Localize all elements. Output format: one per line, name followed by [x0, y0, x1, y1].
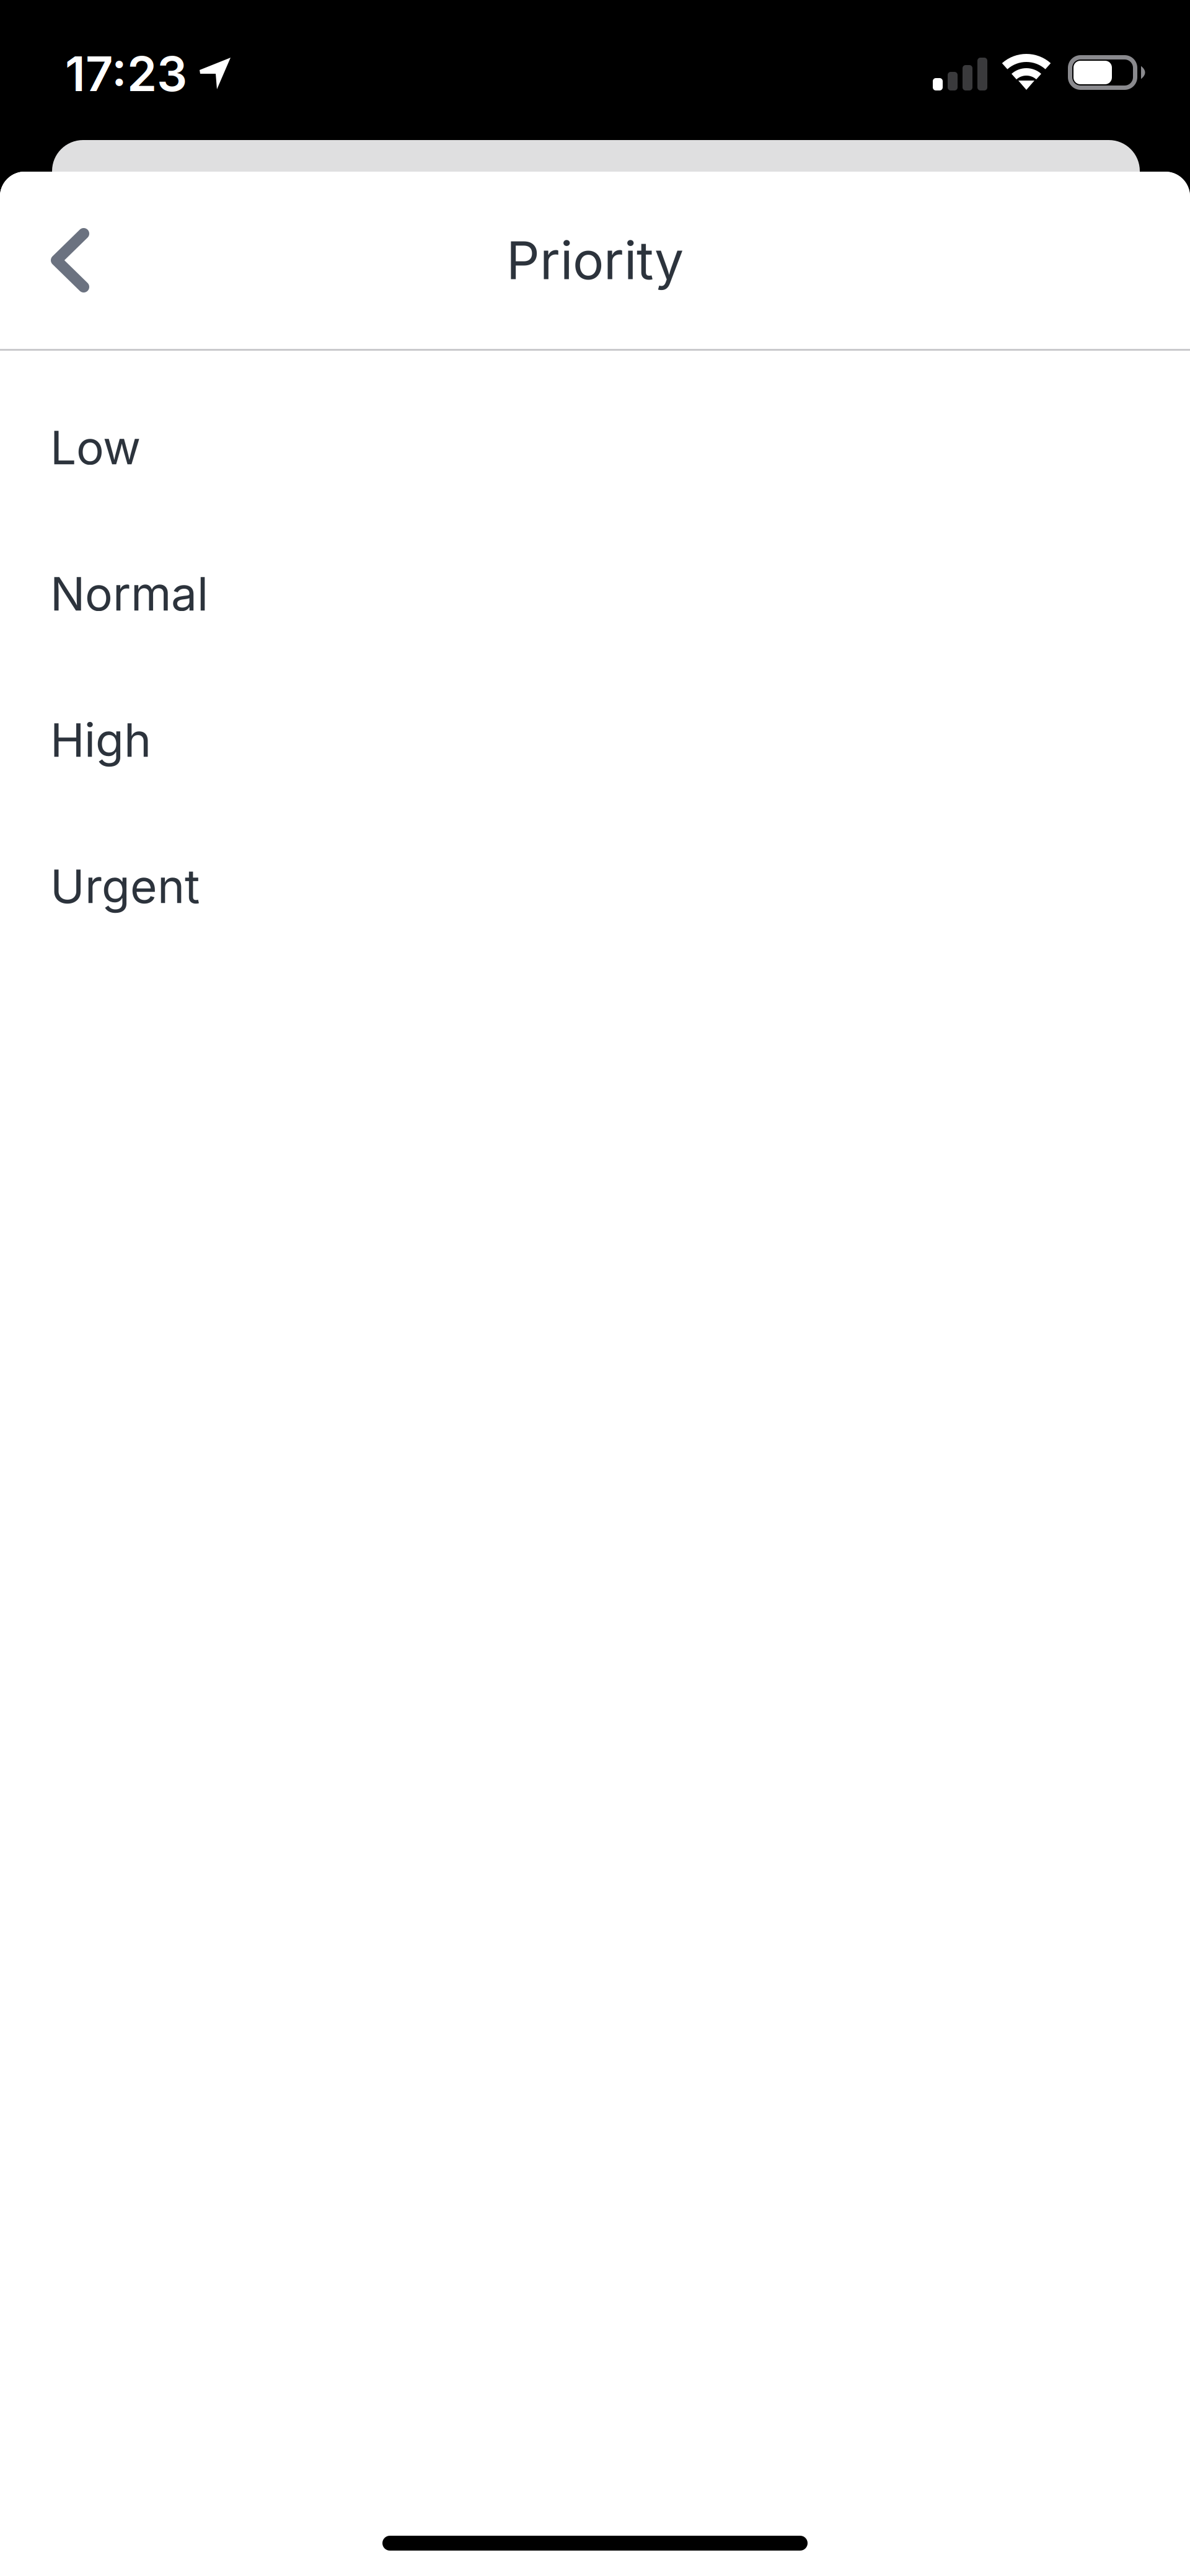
- staticText: 17:23: [65, 45, 187, 103]
- staticText: Normal: [50, 566, 208, 622]
- staticText: Urgent: [50, 858, 200, 914]
- staticText: High: [50, 712, 151, 768]
- staticText: Low: [50, 419, 141, 475]
- button[interactable]: Back: [0, 172, 141, 351]
- button[interactable]: Low: [0, 374, 1190, 521]
- staticText: Priority: [506, 229, 684, 292]
- button[interactable]: High: [0, 667, 1190, 813]
- button[interactable]: Urgent: [0, 813, 1190, 959]
- button[interactable]: Normal: [0, 521, 1190, 667]
